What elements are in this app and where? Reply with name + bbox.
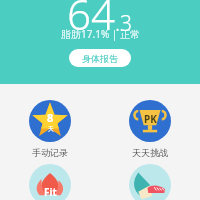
staticText: 手动记录 <box>32 147 68 158</box>
staticText: 天天挑战 <box>132 147 168 158</box>
staticText: 天 <box>48 125 54 133</box>
staticText: .3 <box>115 9 133 38</box>
staticText: PK <box>144 112 157 126</box>
button[interactable]: Manual record <box>0 100 100 158</box>
staticText: Fit <box>44 185 57 199</box>
button[interactable]: Fitness <box>0 170 100 200</box>
button[interactable]: 身体报告 <box>69 49 131 67</box>
staticText: 64 <box>67 0 115 42</box>
staticText: 8 <box>47 110 54 125</box>
button[interactable]: Diet and running <box>100 170 200 200</box>
staticText: 脂肪17.1% | 正常 <box>61 27 140 41</box>
button[interactable]: Daily challenge <box>100 100 200 158</box>
staticText: 身体报告 <box>82 53 118 64</box>
